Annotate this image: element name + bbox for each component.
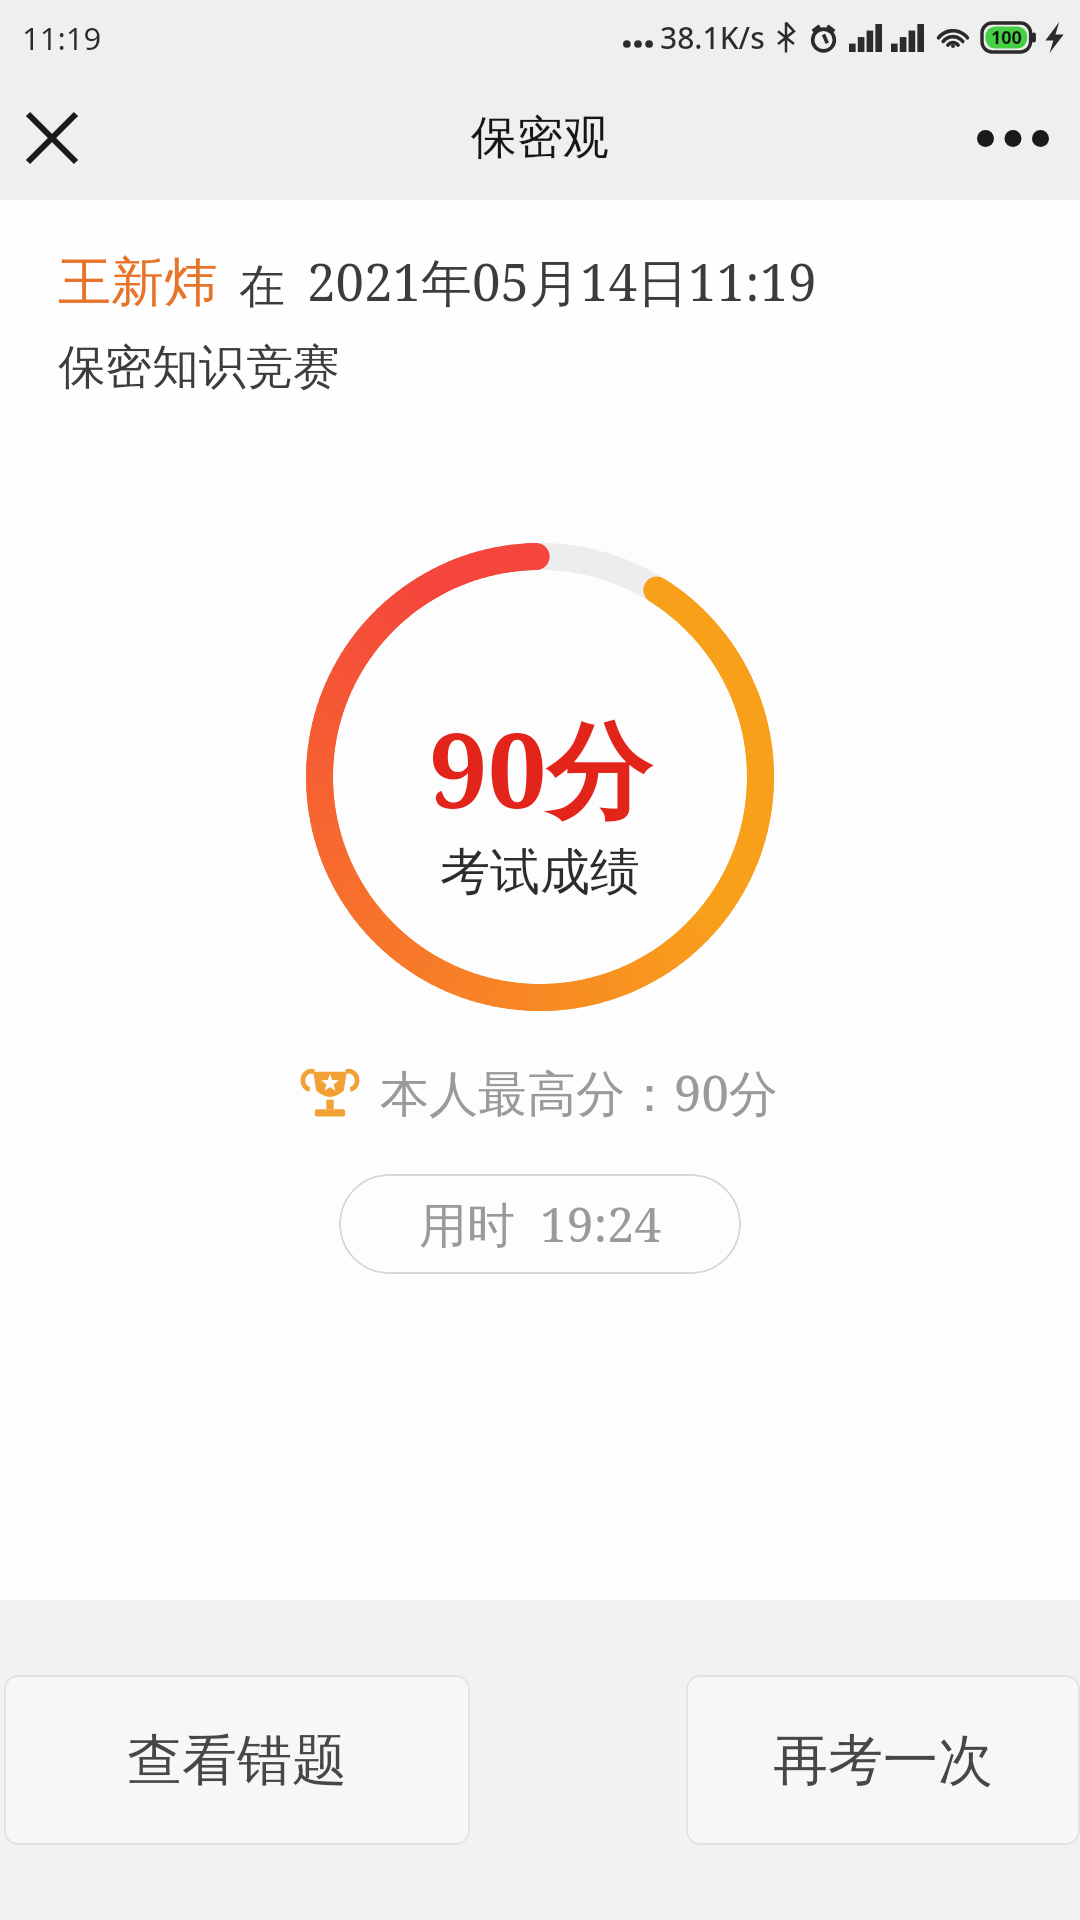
staticText: 2021年05月14日11:19 [307,246,817,316]
button[interactable]: 用时 19:24 [339,1174,741,1274]
staticText: 考试成绩 [440,841,640,904]
staticText: 用时 19:24 [419,1191,662,1257]
staticText: 再考一次 [773,1726,993,1795]
staticText: 查看错题 [127,1726,347,1795]
staticText: 在 [239,258,285,316]
staticText: 本人最高分：90分 [380,1059,778,1126]
staticText: 11:19 [22,17,102,59]
staticText: 90分 [429,697,651,839]
staticText: 保密知识竞赛 [58,338,340,397]
button[interactable]: 再考一次 [686,1675,1080,1845]
staticText: 王新炜 [58,249,217,316]
button[interactable]: 关闭 [12,98,92,178]
staticText: 保密观 [471,109,609,167]
staticText: 100 [991,25,1022,50]
button[interactable]: 查看错题 [4,1675,470,1845]
staticText: 38.1K/s [660,17,765,58]
button[interactable]: 更多 [968,103,1058,173]
